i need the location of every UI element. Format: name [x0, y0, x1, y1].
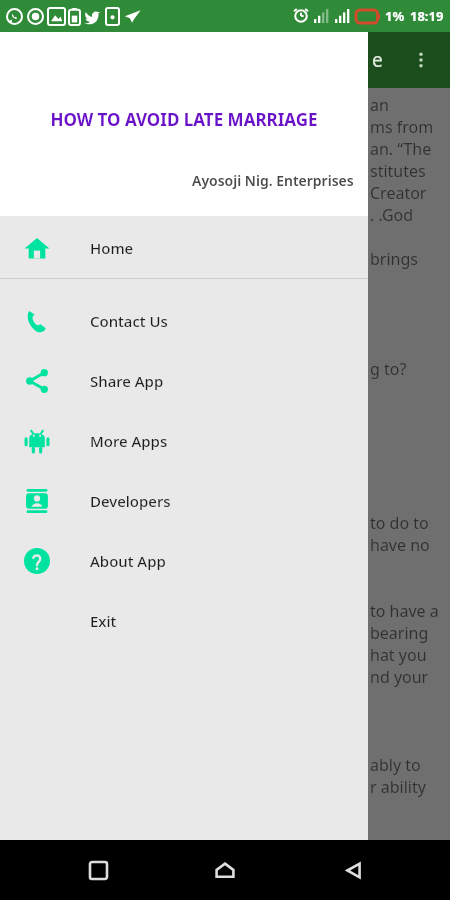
staticText: stitutes	[370, 160, 450, 182]
staticText: Share App	[90, 371, 164, 391]
staticText: r ability	[370, 776, 450, 798]
button[interactable]: About App	[0, 531, 368, 591]
staticText: Home	[90, 238, 134, 258]
button[interactable]: More Apps	[0, 411, 368, 471]
staticText: to have a	[370, 600, 450, 622]
button[interactable]: Share App	[0, 351, 368, 411]
staticText: Developers	[90, 491, 171, 511]
staticText: an. “The	[370, 138, 450, 160]
button[interactable]: Home	[0, 218, 368, 278]
staticText: 1%	[385, 7, 405, 25]
staticText: More Apps	[90, 431, 168, 451]
staticText: hat you	[370, 644, 450, 666]
staticText: an	[370, 94, 450, 116]
button[interactable]: Back	[323, 840, 383, 900]
staticText: 18:19	[410, 7, 444, 25]
staticText: About App	[90, 551, 166, 571]
button[interactable]: Recent apps	[68, 840, 128, 900]
staticText: Exit	[90, 611, 117, 631]
staticText: ms from	[370, 116, 450, 138]
button[interactable]: More options	[400, 39, 442, 81]
staticText: to do to	[370, 512, 450, 534]
button[interactable]: Contact Us	[0, 291, 368, 351]
staticText: Creator	[370, 182, 450, 204]
button[interactable]: Exit	[0, 591, 368, 651]
button[interactable]: Developers	[0, 471, 368, 531]
staticText: . .God	[370, 204, 450, 226]
staticText: bearing	[370, 622, 450, 644]
staticText: g to?	[370, 358, 450, 380]
button[interactable]: Home	[195, 840, 255, 900]
staticText: brings	[370, 248, 450, 270]
staticText: Ayosoji Nig. Enterprises	[192, 171, 354, 190]
staticText: nd your	[370, 666, 450, 688]
staticText: have no	[370, 534, 450, 556]
staticText: e	[372, 47, 383, 73]
staticText: ably to	[370, 754, 450, 776]
staticText: HOW TO AVOID LATE MARRIAGE	[50, 108, 318, 131]
staticText: Contact Us	[90, 311, 168, 331]
